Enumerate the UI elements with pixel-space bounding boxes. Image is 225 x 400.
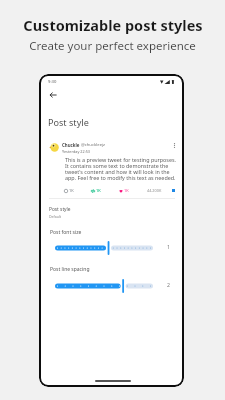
staticText: 1K: [69, 188, 74, 193]
button[interactable]: 1K: [91, 188, 101, 193]
staticText: Customizable post styles: [23, 15, 203, 35]
staticText: Create your perfect experience: [29, 38, 196, 54]
staticText: 9:30: [48, 79, 57, 85]
staticText: 2: [167, 281, 170, 288]
button[interactable]: 1K: [119, 188, 129, 193]
staticText: Default: [49, 214, 62, 219]
staticText: Post style: [49, 206, 71, 213]
staticText: Chuckle: [62, 142, 80, 148]
staticText: Post style: [48, 116, 89, 128]
button[interactable]: More options: [173, 142, 176, 149]
staticText: 1: [167, 243, 170, 250]
button[interactable]: 1K: [64, 188, 74, 193]
staticText: 1K: [96, 188, 101, 193]
staticText: This is a preview tweet for testing purp…: [65, 156, 176, 182]
staticText: Post font size: [50, 229, 82, 236]
staticText: 44.200K: [147, 188, 162, 193]
staticText: Yesterday 22:53: [62, 149, 91, 154]
staticText: @chuckleejz: [81, 142, 106, 148]
button[interactable]: [55, 241, 153, 255]
button[interactable]: Back: [46, 88, 59, 101]
staticText: Post line spacing: [50, 266, 90, 273]
staticText: 1K: [124, 188, 129, 193]
button[interactable]: Post style: [49, 206, 71, 219]
button[interactable]: [55, 279, 153, 293]
